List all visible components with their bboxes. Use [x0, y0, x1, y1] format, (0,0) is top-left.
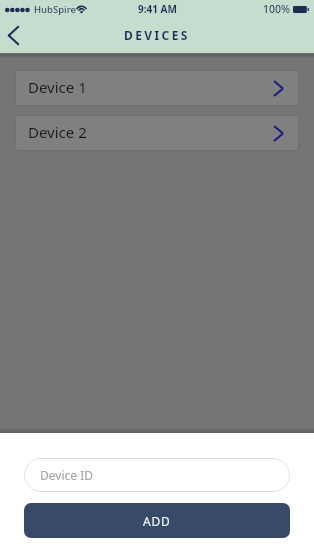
staticText: ADD: [143, 513, 171, 529]
staticText: Device 2: [28, 122, 87, 142]
button[interactable]: Device 1: [15, 70, 299, 106]
staticText: DEVICES: [124, 27, 190, 43]
staticText: Device ID: [40, 467, 93, 483]
button[interactable]: ADD: [24, 503, 290, 538]
staticText: 100%: [263, 2, 290, 16]
staticText: 9:41 AM: [138, 2, 177, 16]
staticText: HubSpire: [34, 3, 76, 16]
staticText: Device 1: [28, 77, 87, 97]
button[interactable]: Device ID: [24, 458, 290, 492]
button[interactable]: Device 2: [15, 115, 299, 151]
button[interactable]: Back: [0, 18, 34, 53]
